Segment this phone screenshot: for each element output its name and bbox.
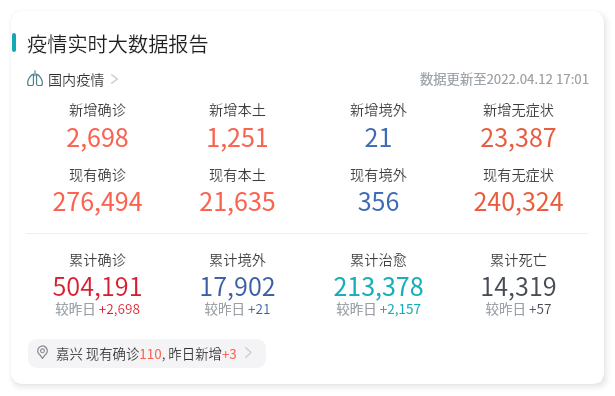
staticText: 504,191: [27, 267, 168, 303]
staticText: 14,319: [448, 267, 589, 303]
staticText: 累计确诊: [27, 249, 168, 270]
staticText: 1,251: [167, 118, 308, 154]
button[interactable]: 国内疫情: [26, 66, 122, 90]
staticText: 国内疫情: [48, 69, 105, 89]
staticText: 嘉兴 现有确诊110, 昨日新增+3: [56, 343, 237, 362]
staticText: 17,902: [167, 267, 308, 303]
staticText: 疫情实时大数据报告: [27, 29, 209, 58]
staticText: 现有确诊: [27, 164, 168, 185]
staticText: 较昨日 +21: [167, 298, 308, 318]
staticText: 新增境外: [308, 99, 449, 120]
staticText: 21: [308, 118, 449, 154]
staticText: 较昨日 +2,698: [27, 298, 168, 318]
staticText: 21,635: [167, 182, 308, 218]
button[interactable]: 嘉兴 现有确诊110, 昨日新增+3: [28, 339, 266, 368]
staticText: 276,494: [27, 182, 168, 218]
staticText: 累计境外: [167, 249, 308, 270]
staticText: 新增无症状: [448, 99, 589, 120]
staticText: 213,378: [308, 267, 449, 303]
staticText: 356: [308, 182, 449, 218]
staticText: 数据更新至2022.04.12 17:01: [420, 69, 590, 88]
staticText: 累计死亡: [448, 249, 589, 270]
staticText: 现有本土: [167, 164, 308, 185]
staticText: 23,387: [448, 118, 589, 154]
staticText: 现有无症状: [448, 164, 589, 185]
staticText: 新增本土: [167, 99, 308, 120]
staticText: 240,324: [448, 182, 589, 218]
staticText: 现有境外: [308, 164, 449, 185]
staticText: 累计治愈: [308, 249, 449, 270]
staticText: 较昨日 +57: [448, 298, 589, 318]
staticText: 2,698: [27, 118, 168, 154]
staticText: 较昨日 +2,157: [308, 298, 449, 318]
staticText: 新增确诊: [27, 99, 168, 120]
